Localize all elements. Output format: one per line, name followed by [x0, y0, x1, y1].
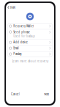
button[interactable]: Passkey: [7, 51, 52, 57]
staticText: Add device: [13, 40, 28, 44]
staticText: Used for backup: [13, 34, 35, 38]
staticText: Passkey: [13, 52, 21, 56]
staticText: Recovery Wallet: [13, 24, 34, 28]
button[interactable]: Learn more about recovery: [12, 59, 48, 63]
staticText: Next: [44, 92, 49, 96]
staticText: Seed phrase: [13, 30, 30, 34]
button[interactable]: Next: [44, 92, 49, 96]
staticText: Learn more about recovery: [12, 59, 48, 63]
button[interactable]: Seed phrase: [7, 29, 52, 39]
staticText: Back: [10, 6, 15, 9]
button[interactable]: Add device: [7, 39, 52, 45]
button[interactable]: Cancel: [11, 92, 20, 96]
staticText: Email: [13, 46, 19, 50]
button[interactable]: Recovery Wallet: [7, 23, 52, 29]
button[interactable]: Back: [8, 6, 15, 9]
staticText: Cancel: [11, 92, 20, 96]
button[interactable]: Email: [7, 45, 52, 51]
